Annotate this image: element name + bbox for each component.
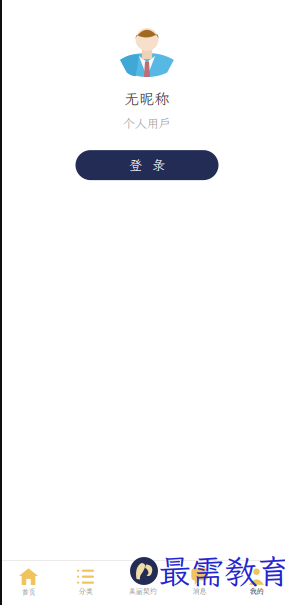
staticText: 最需教育 <box>158 549 285 593</box>
staticText: 首页 <box>21 587 35 597</box>
staticText: 美丽契约 <box>128 586 156 596</box>
staticText: 个人用户 <box>123 115 171 131</box>
staticText: 消息 <box>192 586 206 596</box>
button[interactable]: 消息 <box>171 561 228 605</box>
staticText: 我的 <box>249 586 263 596</box>
button[interactable]: 美丽契约 <box>114 561 171 605</box>
staticText: 登 录 <box>129 156 165 174</box>
button[interactable]: 分类 <box>57 561 114 605</box>
button[interactable]: 登 录 <box>75 150 218 180</box>
button[interactable]: 首页 <box>0 561 57 605</box>
button[interactable]: 我的 <box>228 561 285 605</box>
staticText: 无昵称 <box>124 89 169 108</box>
staticText: 分类 <box>78 586 92 596</box>
